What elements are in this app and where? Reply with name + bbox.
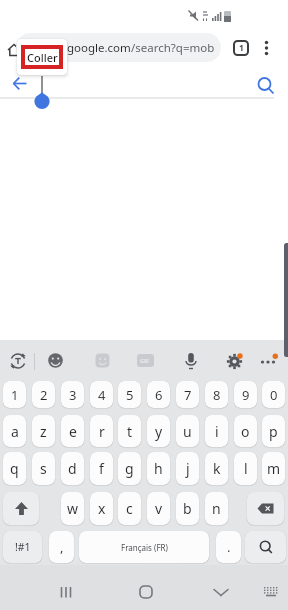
- button[interactable]: [209, 581, 233, 603]
- button[interactable]: t: [118, 415, 141, 447]
- staticText: q: [10, 459, 19, 478]
- button[interactable]: 4: [90, 381, 113, 408]
- button[interactable]: w: [61, 492, 84, 525]
- button[interactable]: [95, 353, 110, 368]
- button[interactable]: [260, 40, 274, 56]
- staticText: 0: [270, 386, 278, 404]
- button[interactable]: m: [262, 452, 285, 485]
- staticText: n: [212, 499, 221, 518]
- staticText: v: [155, 499, 163, 518]
- staticText: z: [40, 422, 47, 441]
- button[interactable]: n: [205, 492, 228, 525]
- staticText: 9: [242, 386, 250, 404]
- staticText: 4: [98, 386, 106, 404]
- button[interactable]: f: [90, 452, 113, 485]
- button[interactable]: !#1: [3, 531, 42, 563]
- button[interactable]: i: [205, 415, 228, 447]
- staticText: r: [99, 422, 105, 441]
- staticText: o: [241, 422, 250, 441]
- button[interactable]: [227, 353, 245, 371]
- staticText: .: [227, 538, 231, 556]
- button[interactable]: [8, 351, 28, 371]
- button[interactable]: a: [3, 415, 26, 447]
- button[interactable]: 1: [3, 381, 26, 408]
- button[interactable]: 8: [205, 381, 228, 408]
- staticText: x: [98, 499, 106, 518]
- button[interactable]: x: [90, 492, 113, 525]
- staticText: c: [126, 499, 133, 518]
- staticText: f: [99, 459, 104, 478]
- button[interactable]: d: [61, 452, 84, 485]
- button[interactable]: Français (FR): [79, 531, 209, 563]
- staticText: 6: [155, 386, 163, 404]
- button[interactable]: z: [32, 415, 55, 447]
- button[interactable]: p: [262, 415, 285, 447]
- button[interactable]: 7: [176, 381, 199, 408]
- button[interactable]: 0: [262, 381, 285, 408]
- staticText: y: [155, 422, 163, 441]
- staticText: GIF: [140, 357, 150, 364]
- button[interactable]: y: [147, 415, 170, 447]
- staticText: j: [186, 459, 190, 478]
- staticText: 1: [11, 386, 19, 404]
- button[interactable]: [3, 492, 39, 525]
- button[interactable]: [259, 582, 283, 602]
- button[interactable]: GIF: [137, 354, 154, 367]
- staticText: w: [67, 499, 79, 518]
- staticText: 8: [213, 386, 221, 404]
- staticText: k: [213, 459, 221, 478]
- button[interactable]: s: [32, 452, 55, 485]
- staticText: p: [269, 422, 278, 441]
- button[interactable]: [54, 581, 78, 603]
- button[interactable]: l: [234, 452, 257, 485]
- button[interactable]: 9: [234, 381, 257, 408]
- button[interactable]: [47, 352, 64, 369]
- staticText: i: [215, 422, 219, 441]
- button[interactable]: Coller: [17, 39, 67, 75]
- staticText: a: [11, 422, 19, 441]
- button[interactable]: [259, 350, 281, 368]
- button[interactable]: c: [118, 492, 141, 525]
- staticText: !#1: [15, 540, 31, 554]
- staticText: ,: [60, 538, 64, 556]
- staticText: 5: [126, 386, 134, 404]
- button[interactable]: 2: [32, 381, 55, 408]
- button[interactable]: google.com: [16, 33, 221, 62]
- button[interactable]: u: [176, 415, 199, 447]
- staticText: Français (FR): [121, 542, 168, 553]
- button[interactable]: .: [216, 531, 241, 563]
- button[interactable]: [183, 351, 199, 371]
- staticText: 7: [184, 386, 192, 404]
- staticText: t: [127, 422, 133, 441]
- button[interactable]: k: [205, 452, 228, 485]
- button[interactable]: [254, 73, 278, 97]
- staticText: g: [125, 459, 134, 478]
- staticText: u: [183, 422, 192, 441]
- button[interactable]: h: [147, 452, 170, 485]
- button[interactable]: ,: [49, 531, 74, 563]
- button[interactable]: 1: [233, 40, 249, 56]
- staticText: /search?q=mob: [131, 40, 215, 56]
- staticText: 3: [69, 386, 77, 404]
- button[interactable]: v: [147, 492, 170, 525]
- button[interactable]: 5: [118, 381, 141, 408]
- button[interactable]: j: [176, 452, 199, 485]
- button[interactable]: [134, 581, 158, 603]
- button[interactable]: [8, 72, 32, 96]
- button[interactable]: [247, 492, 284, 525]
- button[interactable]: e: [61, 415, 84, 447]
- button[interactable]: q: [3, 452, 26, 485]
- staticText: 1: [239, 42, 244, 54]
- staticText: d: [68, 459, 77, 478]
- button[interactable]: b: [176, 492, 199, 525]
- button[interactable]: 3: [61, 381, 84, 408]
- button[interactable]: r: [90, 415, 113, 447]
- staticText: m: [267, 459, 281, 478]
- staticText: e: [69, 422, 77, 441]
- button[interactable]: g: [118, 452, 141, 485]
- staticText: b: [183, 499, 192, 518]
- staticText: google.com: [67, 40, 131, 56]
- button[interactable]: 6: [147, 381, 170, 408]
- button[interactable]: o: [234, 415, 257, 447]
- button[interactable]: [245, 531, 286, 563]
